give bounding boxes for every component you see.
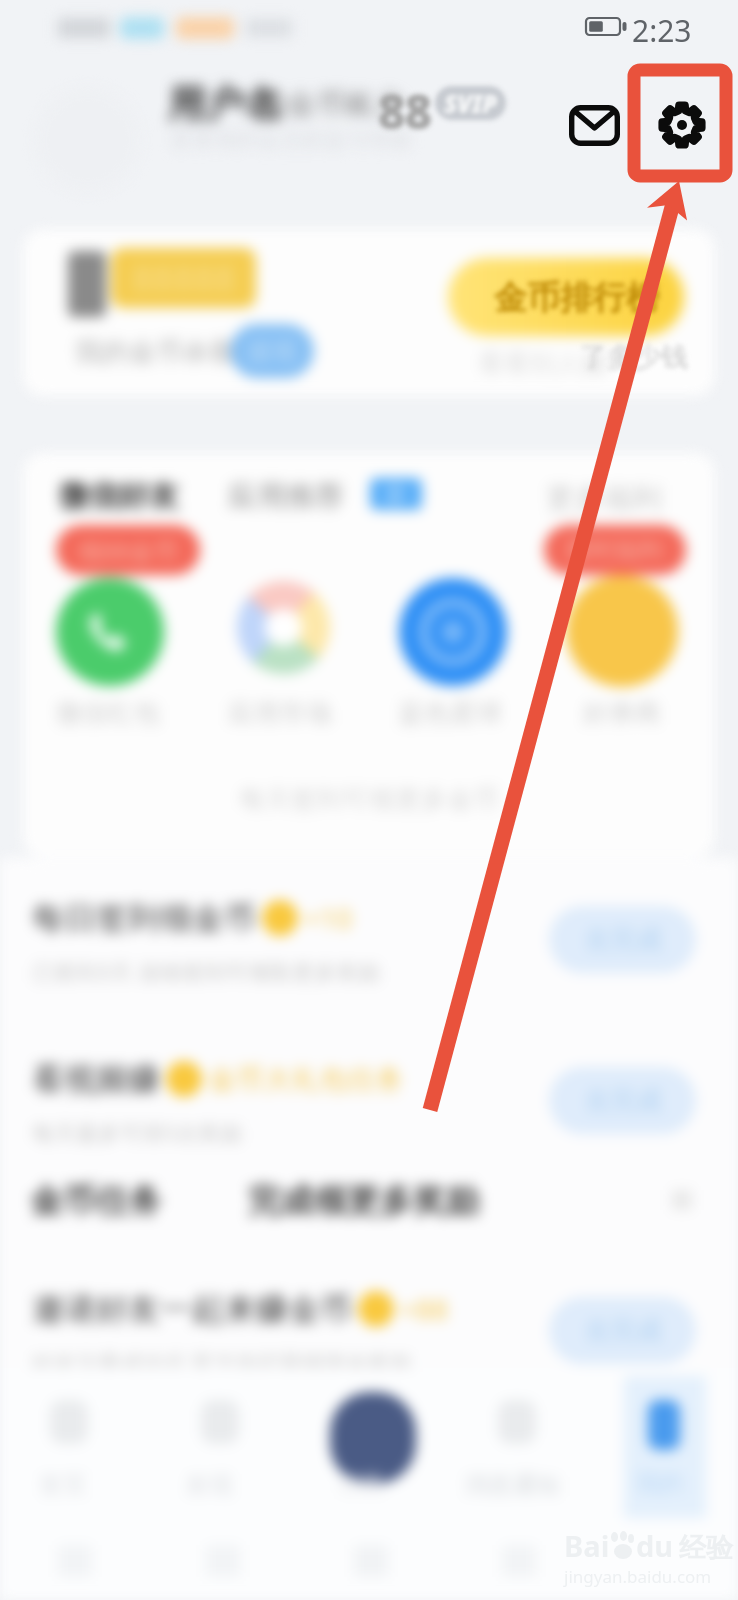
staticText: SVIP (444, 87, 498, 120)
staticText: 更多福利 (546, 480, 662, 517)
button[interactable]: Tab (498, 1400, 536, 1444)
button[interactable]: 去完成 (549, 1067, 696, 1134)
staticText: +10 (304, 899, 353, 937)
staticText: 金币大礼包任务 (208, 1062, 404, 1097)
staticText: 88888 (132, 254, 235, 303)
button[interactable]: Camera (330, 1392, 416, 1484)
button[interactable]: 每日签到领金币 (0, 894, 738, 1002)
staticText: 查看我的会员权益与等级 (170, 126, 412, 154)
staticText: 去完成 (584, 1314, 662, 1347)
button[interactable] (399, 578, 507, 686)
staticText: 的金币账户 (258, 86, 403, 123)
button[interactable]: App store (237, 581, 330, 674)
staticText: 微信红包 (56, 697, 160, 730)
staticText: 看视频赚 (32, 1059, 160, 1099)
staticText: 蓝色星球 (398, 697, 502, 730)
button[interactable]: 去完成 (549, 1297, 696, 1364)
button[interactable]: 看视频赚 (0, 1055, 738, 1163)
staticText: 已签到3天 连续签到可领取更多奖励 (32, 956, 381, 986)
staticText: 邀请好友一起来赚金币 (32, 1289, 352, 1329)
staticText: 每天签到可领更多金币 (239, 783, 499, 816)
staticText: 应用市场 (228, 697, 332, 730)
staticText: 88 (378, 79, 432, 143)
staticText: 限时福利 (567, 535, 663, 565)
staticText: 应用推荐 (228, 478, 344, 515)
staticText: 微信好友 (59, 477, 179, 515)
button[interactable]: Tab (201, 1400, 239, 1444)
staticText: 经验 (679, 1531, 733, 1565)
staticText: +88 (400, 1290, 449, 1328)
button[interactable]: Profile (648, 1400, 680, 1450)
button[interactable]: Messages (545, 84, 643, 166)
staticText: 提现 (248, 336, 296, 366)
button[interactable]: 去完成 (549, 906, 696, 973)
button[interactable]: 邀请好友一起来赚金币 (0, 1285, 738, 1393)
staticText: 去完成 (584, 1084, 662, 1117)
staticText: 相机 (337, 1470, 385, 1500)
staticText: 去完成 (584, 923, 662, 956)
staticText: 金币排行榜 (494, 277, 659, 319)
staticText: 2:23 (632, 10, 692, 51)
button[interactable] (566, 575, 678, 687)
staticText: 领88金币 (78, 534, 178, 567)
button[interactable]: Tab (50, 1400, 88, 1444)
button[interactable] (448, 258, 684, 336)
staticText: 完成领更多奖励 (248, 1180, 479, 1222)
staticText: 我的 (636, 1468, 684, 1498)
button[interactable]: Settings (640, 83, 724, 167)
staticText: 新 (386, 482, 406, 507)
button[interactable]: SVIP (435, 86, 506, 120)
button[interactable]: WeChat (56, 578, 164, 686)
staticText: 了多少钱 (580, 340, 688, 374)
staticText: 看看别人赚 (478, 347, 608, 380)
staticText: 金币任务 (30, 1180, 162, 1222)
staticText: 我的金币余额 (75, 335, 237, 369)
staticText: 好友注册成功后 双方均可获得现金奖励 (32, 1347, 412, 1377)
staticText: du (636, 1526, 674, 1565)
staticText: 好券商 (583, 697, 661, 730)
staticText: 每天最多可得5次奖励 (32, 1117, 243, 1147)
button[interactable]: 88888 (23, 229, 715, 396)
staticText: 每日签到领金币 (32, 898, 256, 938)
staticText: 用户名 (168, 80, 282, 128)
staticText: Bai (564, 1526, 610, 1565)
staticText: jingyan.baidu.com (564, 1565, 712, 1588)
